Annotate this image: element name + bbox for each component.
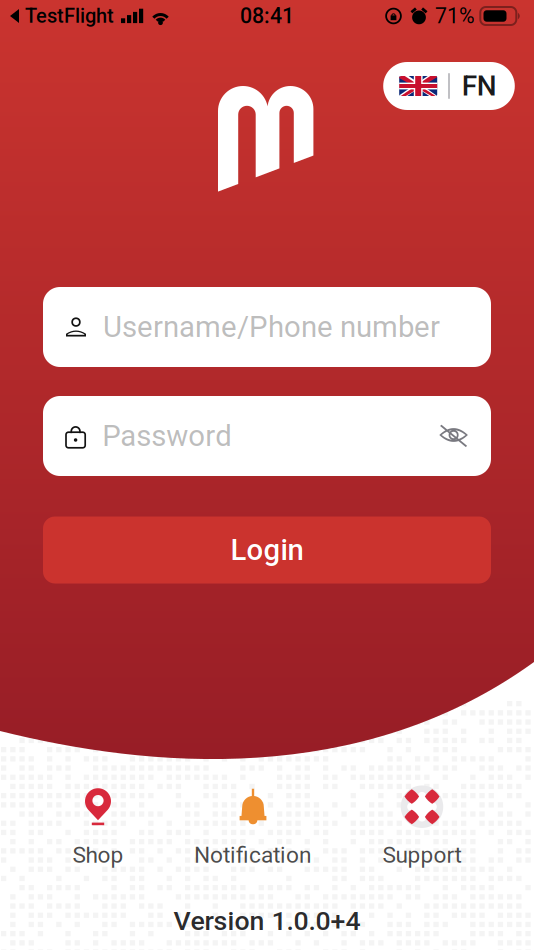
button[interactable]: Notification: [183, 780, 323, 874]
staticText: FN: [462, 70, 497, 102]
staticText: Login: [230, 533, 303, 567]
staticText: Shop: [72, 842, 123, 868]
button[interactable]: Shop: [28, 780, 168, 874]
staticText: Notification: [194, 842, 312, 868]
staticText: Version 1.0.0+4: [173, 905, 360, 937]
button[interactable]: Show password: [439, 424, 468, 447]
staticText: Username/Phone number: [103, 310, 440, 344]
staticText: 71%: [435, 3, 475, 28]
staticText: TestFlight: [25, 4, 114, 28]
staticText: 08:41: [240, 3, 294, 28]
button[interactable]: FN: [383, 62, 515, 110]
staticText: Support: [382, 842, 461, 868]
button[interactable]: Login: [43, 516, 491, 583]
button[interactable]: Support: [352, 780, 492, 874]
staticText: Password: [102, 419, 232, 453]
